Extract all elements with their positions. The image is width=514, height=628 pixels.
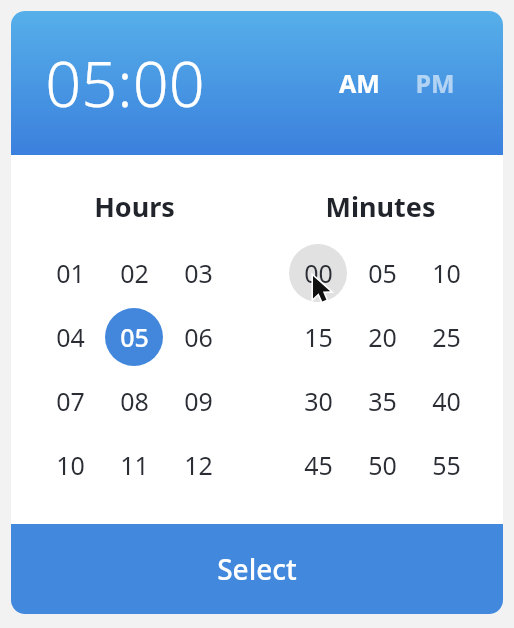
staticText: 04 — [56, 320, 85, 354]
staticText: 08 — [120, 384, 149, 418]
staticText: 00 — [304, 256, 333, 290]
button[interactable]: 07 — [41, 372, 99, 430]
button[interactable]: 00 — [289, 244, 347, 302]
button[interactable]: 10 — [41, 436, 99, 494]
button[interactable]: Select — [11, 524, 503, 614]
button[interactable]: 30 — [289, 372, 347, 430]
staticText: 40 — [432, 384, 461, 418]
button[interactable]: 25 — [417, 308, 475, 366]
staticText: Select — [217, 550, 297, 588]
staticText: 55 — [432, 448, 461, 482]
staticText: 12 — [184, 448, 213, 482]
button[interactable]: PM — [409, 62, 461, 104]
staticText: 07 — [56, 384, 85, 418]
button[interactable]: 45 — [289, 436, 347, 494]
button[interactable]: 08 — [105, 372, 163, 430]
staticText: 05 — [120, 320, 149, 354]
button[interactable]: 01 — [41, 244, 99, 302]
staticText: 11 — [120, 448, 149, 482]
staticText: 50 — [368, 448, 397, 482]
staticText: PM — [415, 66, 455, 100]
button[interactable]: 04 — [41, 308, 99, 366]
staticText: 05 — [368, 256, 397, 290]
staticText: 45 — [304, 448, 333, 482]
staticText: 09 — [184, 384, 213, 418]
staticText: 01 — [56, 256, 85, 290]
button[interactable]: 10 — [417, 244, 475, 302]
button[interactable]: 03 — [169, 244, 227, 302]
staticText: 10 — [432, 256, 461, 290]
staticText: 02 — [120, 256, 149, 290]
button[interactable]: 02 — [105, 244, 163, 302]
staticText: 05:00 — [45, 40, 205, 126]
button[interactable]: 11 — [105, 436, 163, 494]
staticText: 25 — [432, 320, 461, 354]
button[interactable]: AM — [333, 62, 386, 104]
button[interactable]: 05 — [105, 308, 163, 366]
staticText: 10 — [56, 448, 85, 482]
button[interactable]: 20 — [353, 308, 411, 366]
staticText: 15 — [304, 320, 333, 354]
staticText: 35 — [368, 384, 397, 418]
staticText: 30 — [304, 384, 333, 418]
button[interactable]: 06 — [169, 308, 227, 366]
staticText: Hours — [94, 188, 175, 225]
button[interactable]: 50 — [353, 436, 411, 494]
staticText: Minutes — [325, 188, 436, 225]
staticText: 20 — [368, 320, 397, 354]
button[interactable]: 12 — [169, 436, 227, 494]
button[interactable]: 09 — [169, 372, 227, 430]
staticText: AM — [339, 66, 380, 100]
button[interactable]: 05 — [353, 244, 411, 302]
button[interactable]: 55 — [417, 436, 475, 494]
staticText: 06 — [184, 320, 213, 354]
staticText: 03 — [184, 256, 213, 290]
button[interactable]: 40 — [417, 372, 475, 430]
button[interactable]: 35 — [353, 372, 411, 430]
button[interactable]: 15 — [289, 308, 347, 366]
